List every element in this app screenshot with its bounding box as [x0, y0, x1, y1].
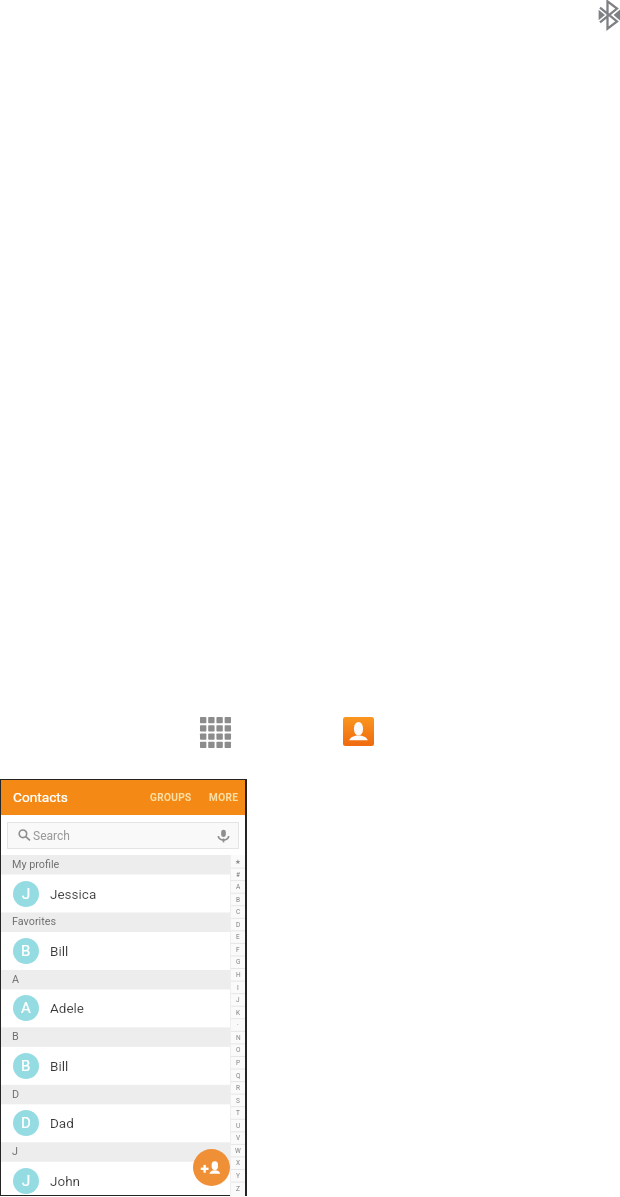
staticText: My profile [12, 858, 60, 871]
staticText: Search [33, 829, 70, 843]
staticText: V [236, 1134, 241, 1142]
button[interactable]: U [231, 1119, 245, 1132]
button[interactable]: O [231, 1043, 245, 1056]
button[interactable]: B [1, 932, 245, 970]
button[interactable]: ★ [231, 855, 245, 868]
staticText: Bill [50, 943, 69, 959]
staticText: O [236, 1046, 241, 1054]
staticText: John [50, 1173, 81, 1189]
button[interactable]: T [231, 1106, 245, 1119]
button[interactable]: W [231, 1144, 245, 1157]
staticText: Y [236, 1172, 240, 1180]
staticText: Adele [50, 1000, 85, 1016]
button[interactable]: B [231, 893, 245, 906]
staticText: D [21, 1114, 31, 1132]
button[interactable]: GROUPS [144, 784, 201, 812]
button[interactable]: Bluetooth [596, 0, 620, 30]
staticText: Dad [50, 1115, 74, 1131]
button[interactable]: J [231, 993, 245, 1006]
staticText: GROUPS [150, 792, 192, 804]
staticText: F [236, 946, 240, 954]
button[interactable]: K [231, 1006, 245, 1019]
staticText: J [12, 1145, 18, 1158]
button[interactable]: Q [231, 1069, 245, 1082]
staticText: H [236, 971, 241, 979]
staticText: J [22, 1172, 31, 1190]
staticText: J [22, 885, 31, 903]
button[interactable]: Search [8, 823, 238, 848]
staticText: # [236, 871, 241, 879]
staticText: A [236, 883, 241, 891]
staticText: A [21, 999, 31, 1017]
button[interactable]: C [231, 905, 245, 918]
staticText: MORE [209, 792, 239, 804]
staticText: Favorites [12, 915, 57, 928]
button[interactable]: Y [231, 1169, 245, 1182]
staticText: P [236, 1059, 241, 1067]
button[interactable]: E [231, 930, 245, 943]
button[interactable]: S [231, 1094, 245, 1107]
button[interactable]: D [231, 918, 245, 931]
button[interactable]: G [231, 955, 245, 968]
button[interactable]: · [231, 1018, 245, 1031]
button[interactable]: Contacts app [343, 717, 374, 746]
staticText: S [236, 1097, 240, 1105]
button[interactable]: P [231, 1056, 245, 1069]
button[interactable]: V [231, 1131, 245, 1144]
button[interactable]: F [231, 943, 245, 956]
button[interactable]: D [1, 1104, 245, 1142]
staticText: G [236, 958, 241, 966]
button[interactable]: A [1, 989, 245, 1027]
staticText: I [237, 984, 239, 992]
staticText: D [236, 921, 241, 929]
staticText: Contacts [13, 789, 68, 805]
staticText: X [236, 1159, 241, 1167]
button[interactable]: # [231, 868, 245, 881]
button[interactable]: J [1, 875, 245, 913]
staticText: U [236, 1122, 241, 1130]
button[interactable]: X [231, 1156, 245, 1169]
button[interactable]: Z [231, 1182, 245, 1195]
staticText: R [236, 1084, 241, 1092]
staticText: D [12, 1088, 20, 1101]
staticText: J [236, 996, 240, 1004]
button[interactable]: A [231, 880, 245, 893]
staticText: K [236, 1009, 241, 1017]
staticText: B [21, 942, 31, 960]
staticText: Jessica [50, 886, 97, 902]
staticText: E [236, 933, 240, 941]
staticText: W [235, 1147, 241, 1155]
staticText: B [21, 1057, 31, 1075]
button[interactable]: B [1, 1047, 245, 1085]
staticText: B [12, 1030, 19, 1043]
staticText: ★ [235, 858, 241, 866]
button[interactable]: Add contact [193, 1149, 230, 1186]
button[interactable]: Apps [200, 717, 231, 748]
button[interactable]: N [231, 1031, 245, 1044]
staticText: Q [236, 1072, 241, 1080]
staticText: Bill [50, 1058, 69, 1074]
button[interactable]: I [231, 981, 245, 994]
staticText: B [236, 896, 241, 904]
staticText: N [236, 1034, 241, 1042]
button[interactable]: J [1, 1162, 245, 1197]
button[interactable]: H [231, 968, 245, 981]
button[interactable]: R [231, 1081, 245, 1094]
staticText: A [12, 973, 20, 986]
staticText: T [236, 1109, 240, 1117]
staticText: C [236, 908, 241, 916]
button[interactable]: MORE [201, 784, 245, 812]
staticText: Z [236, 1185, 240, 1193]
staticText: · [237, 1021, 239, 1029]
